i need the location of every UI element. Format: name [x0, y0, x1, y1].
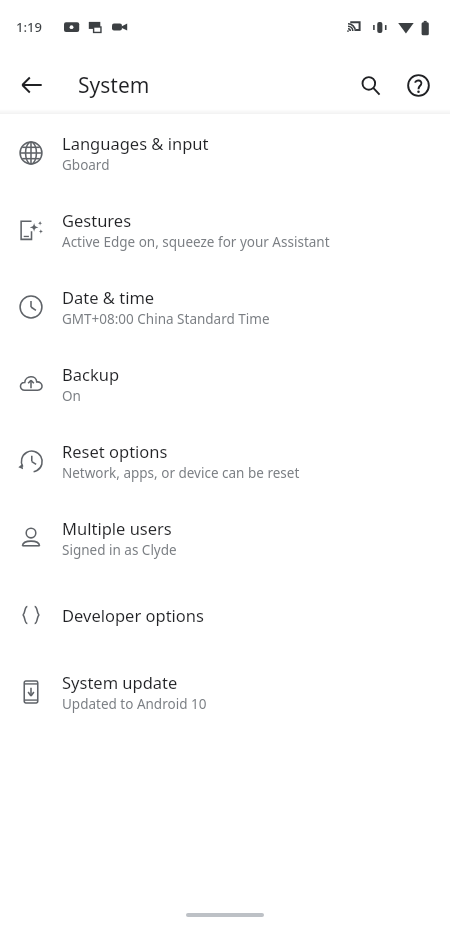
staticText: System	[78, 71, 150, 100]
staticText: Multiple users	[62, 517, 172, 539]
staticText: Reset options	[62, 440, 168, 462]
button[interactable]: Back	[10, 63, 54, 107]
button[interactable]: System update	[0, 653, 450, 730]
staticText: Gestures	[62, 209, 132, 231]
button[interactable]: Help	[394, 61, 442, 109]
staticText: On	[62, 387, 81, 405]
staticText: Signed in as Clyde	[62, 541, 177, 559]
staticText: Network, apps, or device can be reset	[62, 464, 300, 482]
staticText: System update	[62, 671, 178, 693]
staticText: Backup	[62, 363, 120, 385]
staticText: 1:19	[16, 18, 42, 36]
staticText: Active Edge on, squeeze for your Assista…	[62, 233, 330, 251]
button[interactable]: Gestures	[0, 191, 450, 268]
staticText: Gboard	[62, 156, 110, 174]
button[interactable]: Reset options	[0, 422, 450, 499]
staticText: Date & time	[62, 286, 155, 308]
button[interactable]: Search	[346, 61, 394, 109]
staticText: GMT+08:00 China Standard Time	[62, 310, 270, 328]
button[interactable]: Backup	[0, 345, 450, 422]
button[interactable]: Date & time	[0, 268, 450, 345]
button[interactable]: Developer options	[0, 576, 450, 653]
staticText: Updated to Android 10	[62, 695, 207, 713]
staticText: Developer options	[62, 604, 204, 626]
button[interactable]: Languages & input	[0, 114, 450, 191]
staticText: Languages & input	[62, 132, 209, 154]
button[interactable]: Multiple users	[0, 499, 450, 576]
